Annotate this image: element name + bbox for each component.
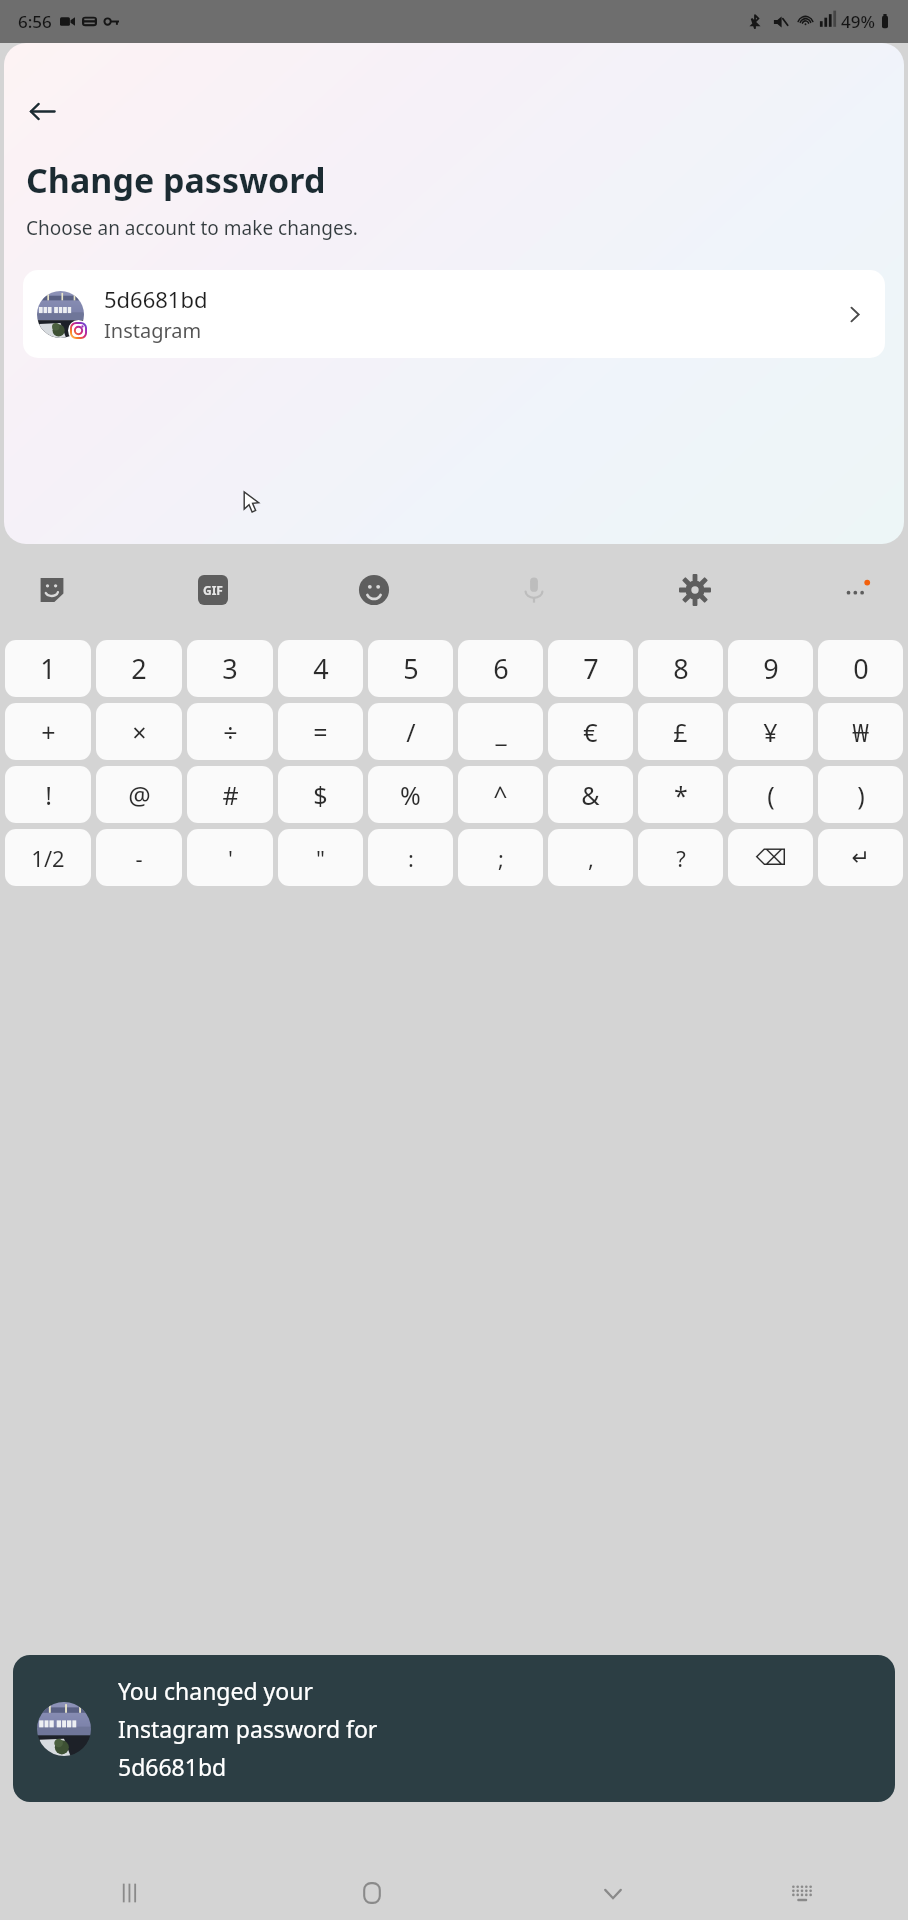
- button[interactable]: 5: [368, 640, 453, 697]
- staticText: 7: [583, 650, 599, 687]
- staticText: €: [583, 715, 598, 749]
- staticText: ,: [588, 843, 594, 873]
- staticText: _: [495, 715, 507, 749]
- staticText: 5d6681bd: [118, 1751, 227, 1782]
- staticText: 6: [493, 650, 509, 687]
- button[interactable]: 8: [638, 640, 723, 697]
- button[interactable]: 1: [5, 640, 91, 697]
- button[interactable]: ÷: [187, 703, 273, 760]
- staticText: /: [406, 715, 416, 749]
- button[interactable]: GIF: [191, 568, 235, 612]
- button[interactable]: More options: [834, 568, 878, 612]
- staticText: ;: [498, 843, 504, 873]
- button[interactable]: Recents: [103, 1865, 159, 1920]
- staticText: 4: [313, 650, 329, 687]
- button[interactable]: ₩: [818, 703, 903, 760]
- button[interactable]: ": [278, 829, 363, 886]
- staticText: You changed your: [118, 1675, 313, 1706]
- button[interactable]: ': [187, 829, 273, 886]
- staticText: ×: [132, 715, 147, 749]
- staticText: Choose an account to make changes.: [26, 215, 358, 241]
- staticText: ^: [493, 778, 508, 812]
- staticText: @: [128, 778, 151, 812]
- button[interactable]: $: [278, 766, 363, 823]
- staticText: *: [674, 778, 688, 812]
- button[interactable]: #: [187, 766, 273, 823]
- button[interactable]: 0: [818, 640, 903, 697]
- button[interactable]: Keyboard settings: [673, 568, 717, 612]
- button[interactable]: £: [638, 703, 723, 760]
- staticText: GIF: [203, 582, 223, 598]
- button[interactable]: Voice input: [512, 568, 556, 612]
- staticText: 3: [222, 650, 238, 687]
- button[interactable]: !: [5, 766, 91, 823]
- button[interactable]: 1/2: [5, 829, 91, 886]
- button[interactable]: Stickers: [30, 568, 74, 612]
- button[interactable]: -: [96, 829, 182, 886]
- staticText: ': [228, 843, 233, 873]
- button[interactable]: 7: [548, 640, 633, 697]
- staticText: 8: [673, 650, 689, 687]
- button[interactable]: €: [548, 703, 633, 760]
- staticText: ₩: [852, 715, 869, 749]
- staticText: 6:56: [18, 10, 52, 33]
- staticText: 49%: [841, 10, 875, 33]
- button[interactable]: =: [278, 703, 363, 760]
- button[interactable]: 9: [728, 640, 813, 697]
- button[interactable]: ): [818, 766, 903, 823]
- staticText: =: [313, 715, 328, 749]
- button[interactable]: Emoji: [352, 568, 396, 612]
- staticText: Change password: [26, 157, 326, 203]
- staticText: Instagram: [104, 317, 202, 344]
- button[interactable]: 6: [458, 640, 543, 697]
- button[interactable]: 3: [187, 640, 273, 697]
- button[interactable]: ×: [96, 703, 182, 760]
- staticText: £: [673, 715, 688, 749]
- button[interactable]: +: [5, 703, 91, 760]
- staticText: ¥: [763, 715, 778, 749]
- button[interactable]: You changed your: [13, 1655, 895, 1802]
- button[interactable]: /: [368, 703, 453, 760]
- staticText: &: [581, 778, 600, 812]
- button[interactable]: Change keyboard: [774, 1865, 830, 1920]
- staticText: Instagram password for: [118, 1713, 378, 1744]
- button[interactable]: @: [96, 766, 182, 823]
- staticText: (: [767, 778, 775, 812]
- staticText: :: [408, 843, 414, 873]
- staticText: 2: [131, 650, 147, 687]
- button[interactable]: &: [548, 766, 633, 823]
- staticText: -: [135, 843, 143, 873]
- staticText: #: [222, 778, 239, 812]
- button[interactable]: Hide keyboard: [585, 1865, 641, 1920]
- staticText: +: [41, 715, 56, 749]
- button[interactable]: ¥: [728, 703, 813, 760]
- staticText: 0: [853, 650, 869, 687]
- button[interactable]: _: [458, 703, 543, 760]
- button[interactable]: 2: [96, 640, 182, 697]
- button[interactable]: 5d6681bd: [23, 270, 885, 358]
- button[interactable]: Back: [18, 87, 66, 135]
- staticText: $: [313, 778, 328, 812]
- button[interactable]: (: [728, 766, 813, 823]
- button[interactable]: ^: [458, 766, 543, 823]
- button[interactable]: ⌫: [728, 829, 813, 886]
- staticText: ↵: [851, 845, 870, 871]
- staticText: ?: [676, 843, 686, 873]
- staticText: 5: [403, 650, 419, 687]
- button[interactable]: ,: [548, 829, 633, 886]
- button[interactable]: ;: [458, 829, 543, 886]
- staticText: 1/2: [31, 843, 65, 873]
- staticText: 1: [40, 650, 56, 687]
- button[interactable]: %: [368, 766, 453, 823]
- button[interactable]: :: [368, 829, 453, 886]
- button[interactable]: ↵: [818, 829, 903, 886]
- staticText: 5d6681bd: [104, 284, 208, 314]
- button[interactable]: ?: [638, 829, 723, 886]
- button[interactable]: *: [638, 766, 723, 823]
- button[interactable]: Home: [344, 1865, 400, 1920]
- staticText: 9: [763, 650, 779, 687]
- staticText: ": [316, 843, 325, 873]
- staticText: ÷: [223, 715, 238, 749]
- staticText: ⌫: [755, 845, 787, 871]
- button[interactable]: 4: [278, 640, 363, 697]
